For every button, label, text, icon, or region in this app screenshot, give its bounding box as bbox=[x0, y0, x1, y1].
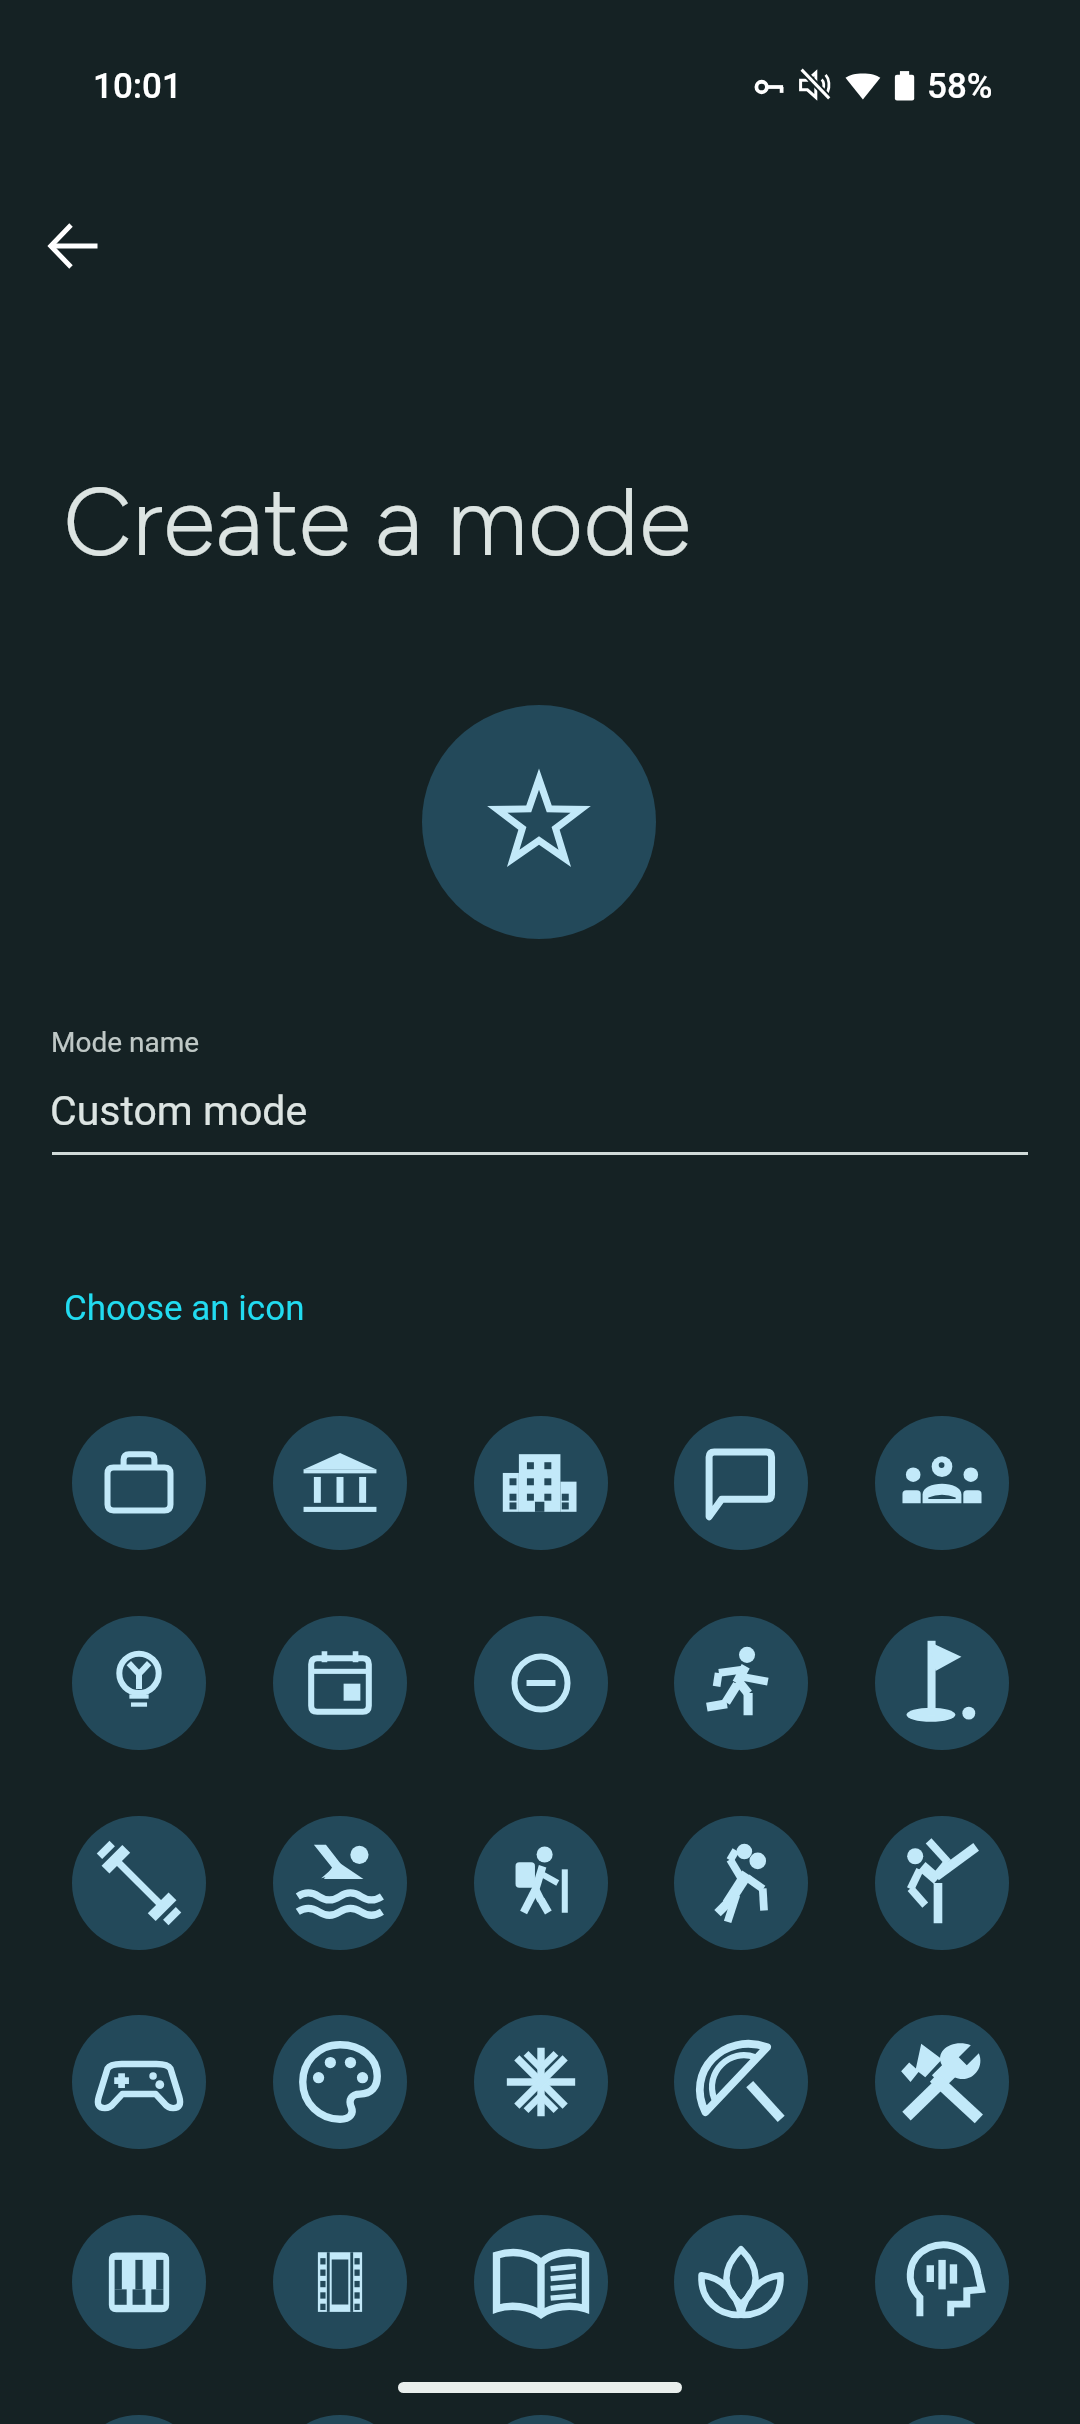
button[interactable]: Mode name bbox=[42, 1012, 1038, 1158]
button[interactable]: City bbox=[474, 2415, 608, 2424]
button[interactable]: People bbox=[875, 2415, 1009, 2424]
button[interactable]: Travel bbox=[72, 2415, 206, 2424]
button[interactable]: Chat bbox=[674, 1416, 808, 1550]
button[interactable]: Work bbox=[72, 1416, 206, 1550]
button[interactable]: Swimming bbox=[273, 1816, 407, 1950]
staticText: Custom mode bbox=[50, 1087, 308, 1135]
button[interactable]: Mindfulness bbox=[875, 2215, 1009, 2349]
button[interactable]: Tools bbox=[875, 2015, 1009, 2149]
button[interactable]: Message bbox=[674, 2415, 808, 2424]
button[interactable]: Running bbox=[674, 1616, 808, 1750]
button[interactable]: Martial arts bbox=[875, 1816, 1009, 1950]
staticText: Mode name bbox=[51, 1026, 200, 1059]
button[interactable]: Gym bbox=[72, 1816, 206, 1950]
button[interactable]: Group bbox=[875, 1416, 1009, 1550]
button[interactable]: Museum bbox=[273, 1416, 407, 1550]
button[interactable]: Music bbox=[72, 2215, 206, 2349]
button[interactable]: Back bbox=[24, 196, 124, 296]
button[interactable]: Calendar bbox=[273, 1616, 407, 1750]
button[interactable]: Hiking bbox=[474, 1816, 608, 1950]
button[interactable]: Sports bbox=[674, 1816, 808, 1950]
button[interactable]: Wellness bbox=[674, 2215, 808, 2349]
button[interactable]: Do not disturb bbox=[474, 1616, 608, 1750]
staticText: 58% bbox=[927, 66, 993, 107]
button[interactable]: Bank bbox=[273, 2415, 407, 2424]
button[interactable]: Movies bbox=[273, 2215, 407, 2349]
button[interactable]: Snow bbox=[474, 2015, 608, 2149]
button[interactable]: Choose an icon bbox=[52, 1276, 293, 1317]
button[interactable]: Gaming bbox=[72, 2015, 206, 2149]
button[interactable]: Idea bbox=[72, 1616, 206, 1750]
button[interactable]: Beach bbox=[674, 2015, 808, 2149]
staticText: Choose an icon bbox=[64, 1288, 305, 1329]
button[interactable]: Golf bbox=[875, 1616, 1009, 1750]
button[interactable]: Reading bbox=[474, 2215, 608, 2349]
button[interactable]: Office bbox=[474, 1416, 608, 1550]
button[interactable]: Art bbox=[273, 2015, 407, 2149]
staticText: 10:01 bbox=[93, 66, 182, 107]
button[interactable]: Selected mode icon, star bbox=[422, 705, 656, 939]
staticText: Create a mode bbox=[63, 464, 692, 579]
